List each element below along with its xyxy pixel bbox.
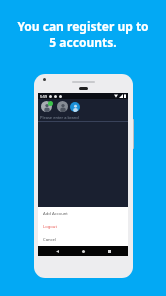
button[interactable]: Recents [104, 246, 114, 256]
staticText: Add Account [43, 211, 68, 217]
button[interactable] [41, 101, 53, 112]
button[interactable] [57, 101, 68, 112]
button[interactable]: Cancel [38, 233, 128, 246]
staticText: 5:59 [40, 94, 47, 99]
button[interactable]: Logout [38, 220, 128, 233]
staticText: Logout [43, 224, 57, 230]
button[interactable]: Home [78, 246, 88, 256]
button[interactable]: Add Account [38, 207, 128, 220]
button[interactable]: Add account [70, 102, 80, 112]
staticText: Cancel [43, 237, 57, 243]
staticText: You can register up to 5 accounts. [17, 18, 149, 50]
staticText: Please enter a brand [40, 115, 79, 120]
button[interactable]: Back [52, 246, 62, 256]
